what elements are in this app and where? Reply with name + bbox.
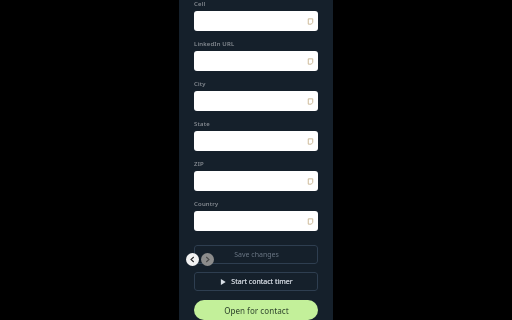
button[interactable]: Country (194, 211, 318, 231)
button[interactable]: State (194, 131, 318, 151)
staticText: ZIP (194, 160, 204, 168)
button[interactable]: Save changes (194, 245, 318, 264)
staticText: Start contact timer (231, 277, 293, 287)
staticText: State (194, 120, 210, 128)
staticText: City (194, 80, 206, 88)
staticText: Open for contact (224, 305, 289, 316)
button[interactable]: Cell (194, 11, 318, 31)
button[interactable]: ZIP (194, 171, 318, 191)
button[interactable]: Next step (201, 253, 214, 266)
button[interactable]: Previous step (186, 253, 199, 266)
button[interactable]: LinkedIn URL (194, 51, 318, 71)
button[interactable]: Start contact timer (194, 272, 318, 291)
staticText: Cell (194, 0, 206, 8)
button[interactable]: City (194, 91, 318, 111)
button[interactable]: Open for contact (194, 300, 318, 320)
staticText: LinkedIn URL (194, 40, 235, 48)
staticText: Country (194, 200, 219, 208)
staticText: Save changes (234, 250, 279, 260)
